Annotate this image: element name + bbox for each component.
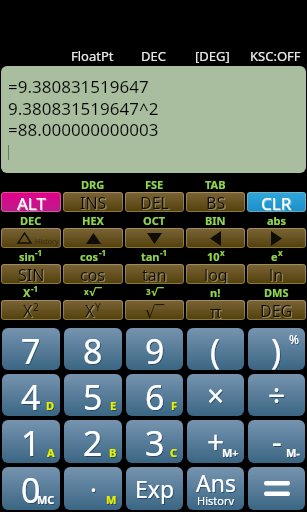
staticText: X bbox=[24, 301, 34, 320]
button[interactable]: Divide bbox=[248, 374, 305, 416]
button[interactable]: INS bbox=[63, 192, 123, 212]
button[interactable]: π bbox=[186, 300, 245, 320]
staticText: KSC:OFF bbox=[250, 47, 301, 65]
staticText: M+ bbox=[222, 445, 239, 460]
button[interactable]: CLR bbox=[247, 192, 306, 212]
staticText: M bbox=[107, 493, 118, 508]
button[interactable]: · bbox=[64, 467, 122, 510]
staticText: C bbox=[170, 445, 178, 460]
staticText: A bbox=[48, 446, 56, 461]
button[interactable]: ( bbox=[187, 328, 244, 370]
button[interactable]: tan bbox=[125, 264, 184, 284]
button[interactable]: 7 bbox=[2, 328, 60, 370]
staticText: E bbox=[110, 398, 117, 413]
staticText: tan bbox=[142, 264, 167, 284]
button[interactable]: 9 bbox=[126, 328, 183, 370]
staticText: π bbox=[210, 300, 222, 320]
button[interactable]: Ans bbox=[187, 467, 244, 510]
staticText: - bbox=[272, 421, 282, 462]
button[interactable]: DEG bbox=[247, 300, 306, 320]
staticText: History bbox=[35, 237, 59, 247]
staticText: Y bbox=[95, 300, 101, 314]
button[interactable]: 6 bbox=[126, 374, 183, 416]
staticText: B bbox=[110, 446, 118, 461]
staticText: A bbox=[47, 445, 55, 460]
staticText: M bbox=[106, 492, 117, 507]
staticText: CLR bbox=[262, 193, 293, 212]
staticText: BS bbox=[207, 193, 227, 212]
staticText: SIN bbox=[19, 265, 46, 284]
button[interactable]: cos bbox=[63, 264, 123, 284]
staticText: DEC bbox=[141, 47, 166, 65]
staticText: ) bbox=[272, 329, 283, 370]
button[interactable]: + bbox=[187, 420, 244, 463]
staticText: ÷ bbox=[269, 376, 287, 416]
staticText: 2 bbox=[84, 421, 104, 463]
staticText: -1 bbox=[99, 247, 107, 258]
button[interactable]: √‾ bbox=[125, 300, 184, 320]
staticText: OCT bbox=[143, 213, 166, 225]
staticText: C bbox=[171, 446, 179, 461]
staticText: ÷ bbox=[268, 375, 286, 416]
staticText: FloatPt bbox=[71, 47, 114, 65]
staticText: SIN bbox=[18, 264, 45, 284]
button[interactable]: ) bbox=[248, 328, 305, 370]
staticText: History bbox=[197, 493, 235, 505]
other: History bbox=[1, 228, 61, 248]
staticText: BS bbox=[206, 192, 226, 212]
staticText: M+ bbox=[223, 446, 240, 461]
staticText: × bbox=[208, 376, 226, 416]
button[interactable]: - bbox=[248, 420, 305, 463]
staticText: ( bbox=[211, 329, 222, 370]
button[interactable]: DEL bbox=[125, 192, 184, 212]
button[interactable]: History bbox=[1, 228, 61, 248]
button[interactable]: 5 bbox=[64, 374, 122, 416]
button[interactable]: Equals bbox=[248, 467, 305, 510]
staticText: × bbox=[207, 375, 225, 416]
staticText: ln bbox=[270, 265, 285, 284]
staticText: 7 bbox=[22, 329, 42, 370]
button[interactable]: Multiply bbox=[187, 374, 244, 416]
staticText: [DEG] bbox=[195, 47, 230, 65]
staticText: ) bbox=[271, 328, 282, 370]
staticText: log bbox=[205, 265, 229, 284]
button[interactable]: 4 bbox=[2, 374, 60, 416]
staticText: abs bbox=[267, 213, 287, 225]
button[interactable] bbox=[247, 228, 306, 248]
staticText: e bbox=[271, 249, 278, 261]
staticText: M- bbox=[287, 446, 301, 461]
button[interactable]: 0 bbox=[2, 467, 60, 510]
staticText: DEG bbox=[260, 300, 293, 320]
staticText: 3 bbox=[146, 421, 166, 463]
staticText: Ans bbox=[196, 467, 236, 498]
staticText: + bbox=[208, 422, 226, 463]
button[interactable]: X bbox=[63, 300, 123, 320]
staticText: √‾ bbox=[89, 284, 102, 296]
staticText: E bbox=[111, 399, 118, 414]
button[interactable]: log bbox=[186, 264, 245, 284]
button[interactable]: 3 bbox=[126, 420, 183, 463]
button[interactable]: 1 bbox=[2, 420, 60, 463]
staticText: 7 bbox=[21, 328, 41, 370]
button[interactable]: ln bbox=[247, 264, 306, 284]
button[interactable]: 8 bbox=[64, 328, 122, 370]
staticText: B bbox=[109, 445, 117, 460]
button[interactable]: Exp bbox=[126, 467, 183, 510]
staticText: 1 bbox=[22, 421, 42, 463]
staticText: 10 bbox=[207, 249, 220, 261]
staticText: DEG bbox=[261, 301, 294, 320]
button[interactable] bbox=[186, 228, 245, 248]
button[interactable]: 2 bbox=[64, 420, 122, 463]
button[interactable]: X bbox=[1, 300, 61, 320]
staticText: + bbox=[207, 421, 225, 462]
button[interactable] bbox=[125, 228, 184, 248]
button[interactable]: ALT bbox=[1, 192, 61, 212]
button[interactable]: BS bbox=[186, 192, 245, 212]
staticText: F bbox=[172, 399, 179, 414]
staticText: 6 bbox=[145, 374, 165, 416]
staticText: log bbox=[204, 264, 228, 284]
button[interactable]: SIN bbox=[1, 264, 61, 284]
button[interactable] bbox=[63, 228, 123, 248]
staticText: 2 bbox=[83, 420, 103, 463]
staticText: M- bbox=[286, 445, 300, 460]
